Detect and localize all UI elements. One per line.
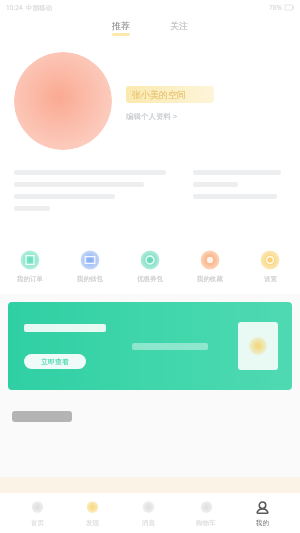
button[interactable]: 优惠券包 bbox=[120, 246, 180, 287]
staticText: 10:24 中国移动 bbox=[6, 3, 52, 12]
staticText: 张小美的空间 bbox=[132, 89, 186, 100]
button[interactable]: 购物车 bbox=[186, 497, 226, 530]
button[interactable]: 立即查看 bbox=[8, 302, 292, 390]
button[interactable]: 我的 bbox=[244, 497, 281, 530]
staticText: 关注 bbox=[170, 20, 188, 31]
button[interactable]: 推荐 bbox=[105, 18, 137, 38]
button[interactable]: 发现 bbox=[74, 497, 111, 530]
staticText: 设置 bbox=[264, 275, 277, 283]
staticText: 78% bbox=[269, 3, 282, 12]
staticText: 我的收藏 bbox=[197, 275, 223, 283]
staticText: 我的 bbox=[256, 519, 269, 527]
button[interactable]: 立即查看 bbox=[24, 354, 86, 369]
staticText: 立即查看 bbox=[41, 357, 69, 366]
button[interactable]: 我的收藏 bbox=[180, 246, 240, 287]
staticText: 发现 bbox=[86, 519, 99, 527]
staticText: 我的订单 bbox=[17, 275, 43, 283]
button[interactable]: 我的钱包 bbox=[60, 246, 120, 287]
staticText: 我的钱包 bbox=[77, 275, 103, 283]
button[interactable]: 设置 bbox=[240, 246, 300, 287]
staticText: 推荐 bbox=[112, 20, 130, 31]
button[interactable]: 张小美的空间 bbox=[126, 86, 214, 103]
staticText: 购物车 bbox=[196, 519, 216, 527]
button[interactable]: 关注 bbox=[163, 18, 195, 38]
staticText: 消息 bbox=[142, 519, 155, 527]
staticText: 编辑个人资料 > bbox=[126, 111, 178, 121]
button[interactable]: 消息 bbox=[130, 497, 167, 530]
button[interactable]: 首页 bbox=[19, 497, 56, 530]
staticText: 首页 bbox=[31, 519, 44, 527]
button[interactable]: Avatar bbox=[14, 52, 112, 150]
staticText: 优惠券包 bbox=[137, 275, 163, 283]
button[interactable]: 我的订单 bbox=[0, 246, 60, 287]
